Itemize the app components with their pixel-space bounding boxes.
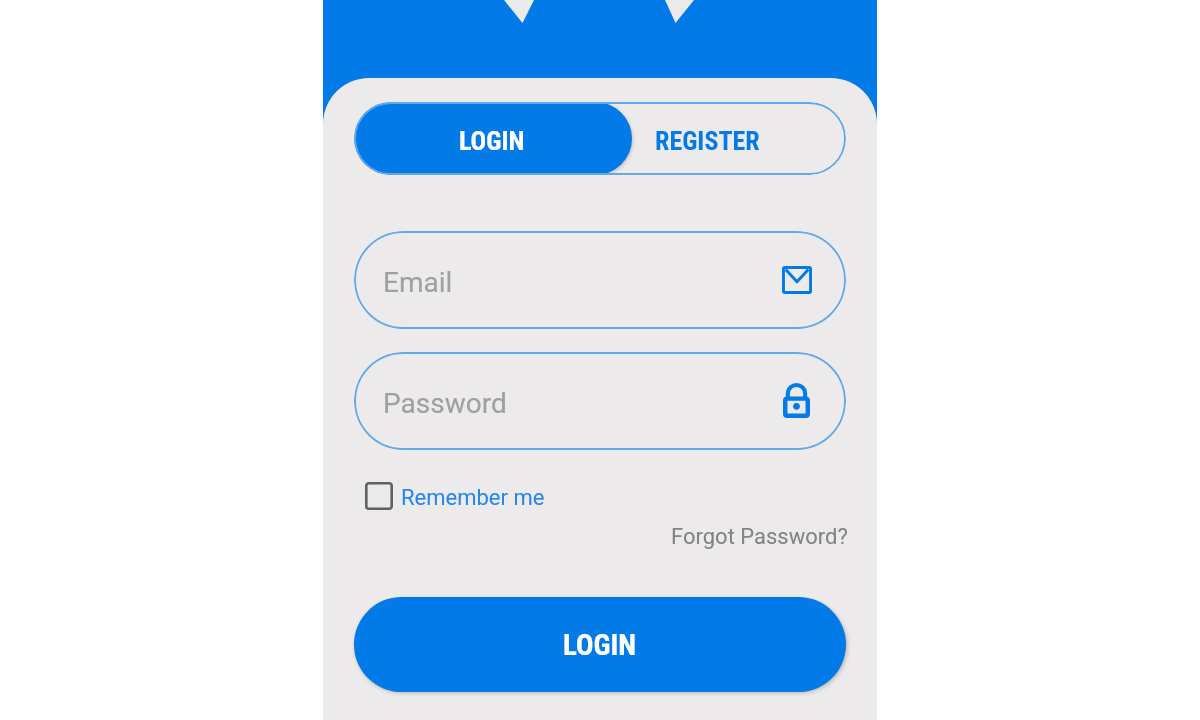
staticText: Password: [383, 387, 507, 420]
button[interactable]: LOGIN: [354, 597, 846, 692]
staticText: REGISTER: [655, 126, 760, 156]
button[interactable]: Forgot Password?: [667, 521, 852, 553]
button[interactable]: Remember me: [365, 482, 545, 510]
button[interactable]: REGISTER: [631, 102, 846, 175]
staticText: Forgot Password?: [671, 524, 848, 550]
button[interactable]: LOGIN: [354, 102, 632, 175]
staticText: LOGIN: [563, 628, 637, 662]
staticText: LOGIN: [459, 126, 525, 156]
button[interactable]: Password: [354, 352, 846, 450]
staticText: Remember me: [401, 485, 545, 511]
button[interactable]: Email: [354, 231, 846, 329]
staticText: Email: [383, 266, 453, 299]
